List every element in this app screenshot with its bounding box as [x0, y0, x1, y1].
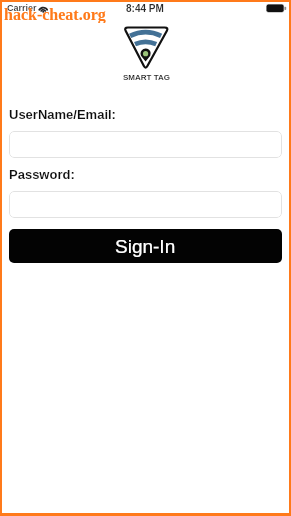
other: Wi-Fi signal — [38, 4, 49, 13]
button[interactable] — [9, 131, 282, 158]
staticText: Carrier — [7, 3, 37, 13]
staticText: SMART TAG — [123, 73, 170, 82]
button[interactable] — [9, 191, 282, 218]
button[interactable]: Sign-In — [9, 229, 282, 263]
staticText: UserName/Email: — [9, 107, 116, 122]
staticText: hack-cheat.org — [4, 6, 106, 23]
staticText: Sign-In — [115, 236, 176, 257]
other: Battery full — [266, 4, 287, 13]
staticText: 8:44 PM — [126, 3, 164, 14]
staticText: Password: — [9, 167, 75, 182]
